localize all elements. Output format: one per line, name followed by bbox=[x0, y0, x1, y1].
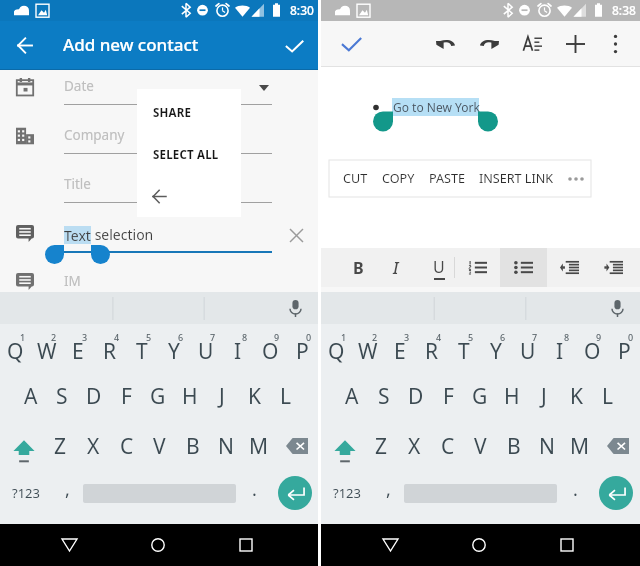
button[interactable]: Clear bbox=[283, 222, 310, 249]
button[interactable]: Q bbox=[0, 324, 31, 371]
button[interactable]: Text format bbox=[511, 21, 554, 67]
button[interactable]: SHARE bbox=[137, 91, 241, 134]
button[interactable]: V bbox=[143, 422, 176, 471]
button[interactable]: CUT bbox=[336, 161, 375, 196]
button[interactable]: H bbox=[174, 371, 206, 422]
button[interactable]: T bbox=[448, 324, 480, 371]
button[interactable]: J bbox=[206, 371, 238, 422]
button[interactable]: D bbox=[400, 371, 432, 422]
button[interactable]: Shift bbox=[0, 422, 43, 471]
button[interactable]: Recents bbox=[544, 524, 589, 566]
button[interactable]: I bbox=[222, 324, 254, 371]
button[interactable]: I bbox=[544, 324, 576, 371]
button[interactable]: K bbox=[560, 371, 592, 422]
button[interactable]: INSERT LINK bbox=[472, 161, 561, 196]
button[interactable]: B bbox=[339, 248, 377, 287]
button[interactable]: P bbox=[608, 324, 640, 371]
button[interactable]: Q bbox=[321, 324, 352, 371]
button[interactable]: E bbox=[384, 324, 416, 371]
button[interactable]: U bbox=[190, 324, 222, 371]
button[interactable]: Back bbox=[47, 524, 92, 566]
button[interactable]: P bbox=[286, 324, 318, 371]
button[interactable]: . bbox=[236, 467, 272, 519]
button[interactable]: I bbox=[377, 248, 415, 287]
button[interactable]: PASTE bbox=[422, 161, 472, 196]
button[interactable]: H bbox=[496, 371, 528, 422]
button[interactable]: More options bbox=[594, 21, 637, 67]
button[interactable]: A bbox=[15, 371, 46, 422]
button[interactable]: Space bbox=[83, 467, 236, 519]
button[interactable]: U bbox=[420, 248, 458, 287]
button[interactable]: . bbox=[557, 467, 593, 519]
button[interactable]: Y bbox=[480, 324, 512, 371]
button[interactable]: ?123 bbox=[0, 467, 52, 519]
button[interactable]: Shift bbox=[321, 422, 364, 471]
button[interactable]: O bbox=[254, 324, 286, 371]
button[interactable]: G bbox=[142, 371, 174, 422]
button[interactable]: Done bbox=[329, 21, 374, 67]
button[interactable]: X bbox=[398, 422, 431, 471]
button[interactable]: Back bbox=[137, 175, 241, 217]
button[interactable]: K bbox=[238, 371, 270, 422]
button[interactable]: T bbox=[126, 324, 158, 371]
button[interactable]: Delete bbox=[596, 422, 639, 471]
button[interactable]: O bbox=[576, 324, 608, 371]
button[interactable]: Insert bbox=[554, 21, 597, 67]
button[interactable]: B bbox=[176, 422, 209, 471]
button[interactable]: F bbox=[110, 371, 142, 422]
button[interactable]: Undo bbox=[424, 21, 467, 67]
button[interactable]: Back bbox=[1, 22, 48, 69]
button[interactable]: D bbox=[78, 371, 110, 422]
button[interactable]: , bbox=[373, 467, 404, 519]
button[interactable]: C bbox=[431, 422, 464, 471]
button[interactable]: More bbox=[561, 161, 591, 197]
button[interactable]: Z bbox=[43, 422, 77, 471]
button[interactable]: X bbox=[77, 422, 110, 471]
button[interactable]: N bbox=[209, 422, 242, 471]
button[interactable]: B bbox=[497, 422, 530, 471]
button[interactable]: A bbox=[336, 371, 368, 422]
button[interactable]: R bbox=[94, 324, 126, 371]
button[interactable]: ?123 bbox=[321, 467, 373, 519]
button[interactable]: Delete bbox=[275, 422, 318, 471]
button[interactable]: C bbox=[110, 422, 143, 471]
button[interactable]: Y bbox=[158, 324, 190, 371]
button[interactable]: Back bbox=[368, 524, 413, 566]
button[interactable]: L bbox=[592, 371, 624, 422]
button[interactable]: Increase indent bbox=[591, 248, 635, 287]
button[interactable]: W bbox=[31, 324, 62, 371]
button[interactable]: Z bbox=[364, 422, 398, 471]
button[interactable]: SELECT ALL bbox=[137, 133, 241, 176]
button[interactable]: Enter bbox=[593, 467, 639, 519]
button[interactable]: Space bbox=[404, 467, 557, 519]
button[interactable]: Enter bbox=[272, 467, 318, 519]
button[interactable]: COPY bbox=[375, 161, 422, 196]
staticText: 6 bbox=[178, 331, 184, 343]
button[interactable]: Voice input bbox=[280, 293, 310, 323]
button[interactable]: Bulleted list bbox=[500, 248, 547, 287]
button[interactable]: R bbox=[416, 324, 448, 371]
button[interactable]: L bbox=[270, 371, 302, 422]
button[interactable]: , bbox=[52, 467, 83, 519]
button[interactable]: Decrease indent bbox=[547, 248, 591, 287]
button[interactable]: G bbox=[464, 371, 496, 422]
button[interactable]: Recents bbox=[223, 524, 268, 566]
button[interactable]: Numbered list bbox=[458, 248, 497, 287]
staticText: A bbox=[345, 382, 359, 411]
button[interactable]: V bbox=[464, 422, 497, 471]
button[interactable]: S bbox=[46, 371, 78, 422]
button[interactable]: J bbox=[528, 371, 560, 422]
button[interactable]: E bbox=[62, 324, 94, 371]
button[interactable]: S bbox=[368, 371, 400, 422]
button[interactable]: U bbox=[512, 324, 544, 371]
button[interactable]: Save bbox=[272, 24, 316, 68]
button[interactable]: N bbox=[530, 422, 563, 471]
button[interactable]: M bbox=[242, 422, 275, 471]
button[interactable]: F bbox=[432, 371, 464, 422]
button[interactable]: Home bbox=[456, 524, 501, 566]
button[interactable]: M bbox=[563, 422, 596, 471]
button[interactable]: Voice input bbox=[602, 293, 632, 323]
button[interactable]: W bbox=[352, 324, 384, 371]
button[interactable]: Home bbox=[135, 524, 180, 566]
button[interactable]: Redo bbox=[468, 21, 511, 67]
